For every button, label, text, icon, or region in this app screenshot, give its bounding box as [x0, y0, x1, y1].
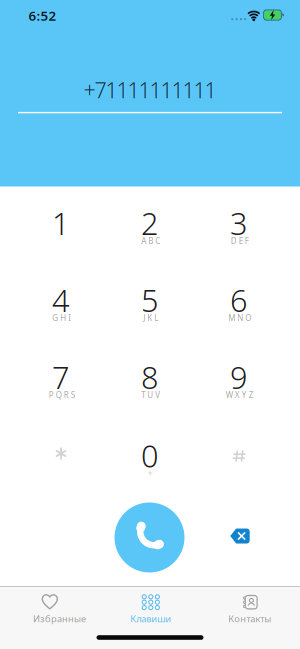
staticText: Избранные: [33, 612, 86, 625]
staticText: DEF: [231, 236, 249, 246]
button[interactable]: Call: [114, 502, 184, 572]
staticText: 8: [141, 357, 159, 397]
staticText: 1: [52, 203, 70, 243]
button[interactable]: 4: [17, 275, 105, 339]
button[interactable]: *: [31, 425, 91, 481]
button[interactable]: 3: [195, 198, 283, 262]
button[interactable]: 2: [106, 198, 194, 262]
button[interactable]: Контакты: [200, 587, 300, 633]
staticText: 6:52: [28, 7, 56, 24]
staticText: ABC: [141, 236, 160, 246]
staticText: 9: [230, 357, 248, 397]
button[interactable]: 9: [195, 352, 283, 416]
staticText: PQRS: [49, 390, 75, 400]
staticText: GHI: [52, 313, 71, 323]
staticText: +: [147, 467, 152, 479]
staticText: Клавиши: [130, 612, 171, 625]
staticText: 2: [141, 203, 159, 243]
button[interactable]: 0: [120, 432, 180, 488]
staticText: 3: [230, 203, 248, 243]
staticText: 7: [52, 357, 70, 397]
staticText: MNO: [228, 313, 251, 323]
button[interactable]: 6: [195, 275, 283, 339]
staticText: 0: [141, 435, 159, 476]
staticText: JKL: [143, 313, 158, 323]
button[interactable]: 7: [17, 352, 105, 416]
staticText: TUV: [141, 390, 160, 400]
staticText: 5: [141, 280, 159, 320]
button[interactable]: Клавиши: [100, 587, 200, 633]
staticText: +71111111111: [83, 76, 216, 104]
staticText: 6: [230, 280, 248, 320]
button[interactable]: 8: [106, 352, 194, 416]
staticText: Контакты: [228, 612, 271, 625]
button[interactable]: 5: [106, 275, 194, 339]
button[interactable]: #: [209, 428, 269, 484]
button[interactable]: Избранные: [0, 587, 100, 633]
button[interactable]: Delete: [226, 524, 254, 548]
button[interactable]: 1: [17, 198, 105, 262]
staticText: WXYZ: [226, 390, 254, 400]
staticText: 4: [52, 280, 70, 320]
